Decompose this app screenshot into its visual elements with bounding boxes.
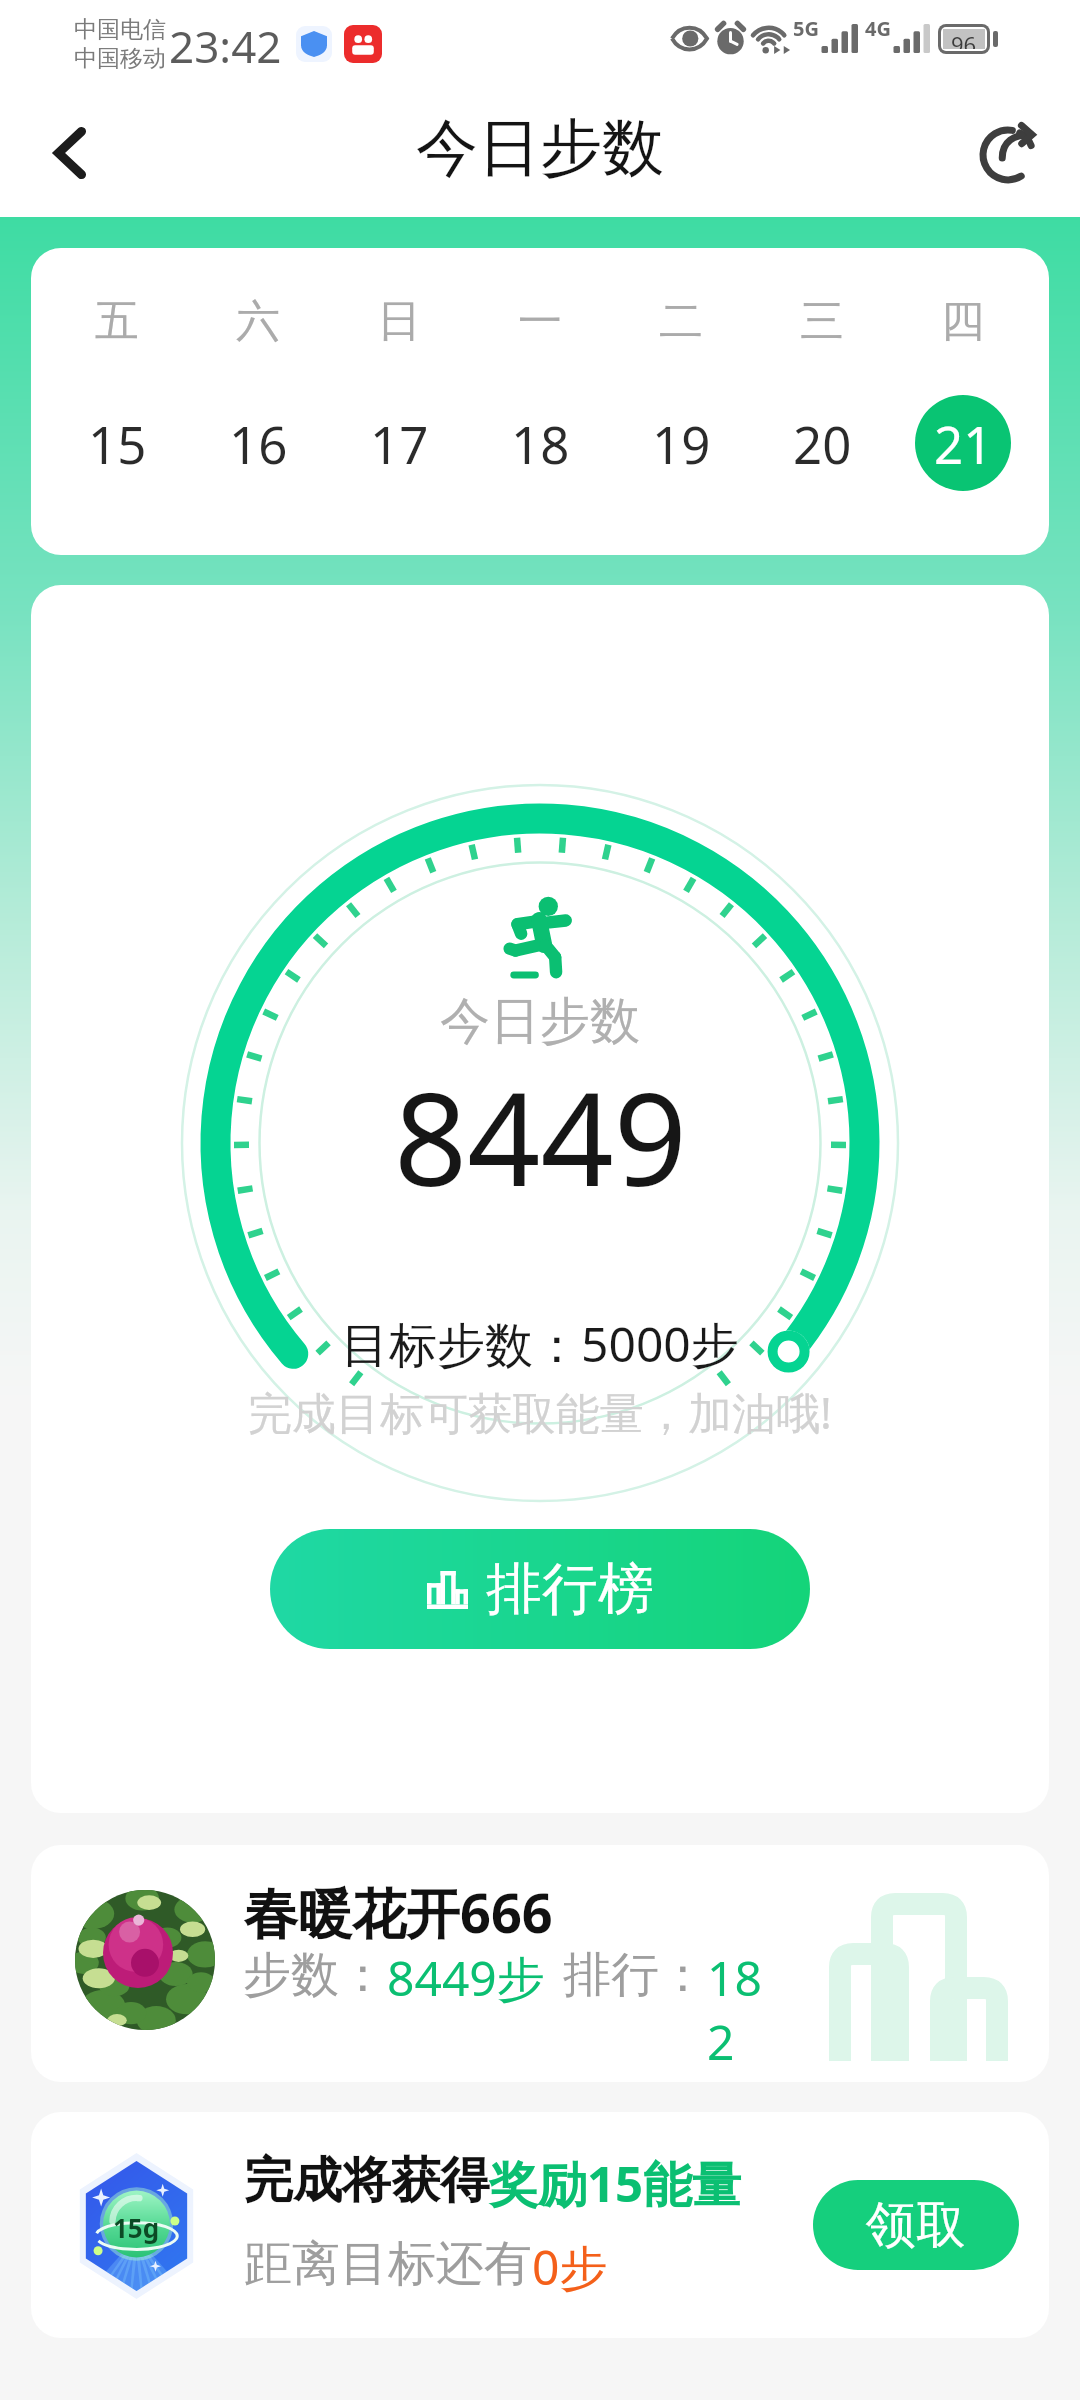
button[interactable]: 排行榜	[270, 1529, 810, 1649]
staticText: 182	[707, 1945, 765, 2074]
staticText: 领取	[866, 2194, 966, 2257]
staticText: 0步	[532, 2234, 608, 2300]
staticText: 距离目标还有	[244, 2234, 532, 2294]
staticText: 奖励15能量	[489, 2150, 742, 2217]
staticText: 8449步	[387, 1945, 545, 2011]
button[interactable]: 21	[915, 395, 1011, 491]
staticText: 4G	[865, 15, 891, 42]
button[interactable]: Back	[34, 117, 106, 189]
staticText: 今日步数	[416, 109, 664, 187]
staticText: 四	[941, 294, 985, 349]
staticText: 完成将获得	[244, 2150, 489, 2212]
staticText: 排行：	[563, 1945, 707, 2005]
staticText: 23:42	[169, 16, 282, 76]
staticText: 5G	[793, 15, 819, 42]
staticText: 15	[88, 409, 147, 478]
staticText: 一	[518, 294, 562, 349]
staticText: 二	[659, 294, 703, 349]
staticText: 21	[934, 409, 993, 478]
button[interactable]: 18	[492, 395, 588, 491]
button[interactable]: Refresh	[976, 121, 1040, 185]
staticText: 17	[370, 409, 429, 478]
staticText: 春暖花开666	[244, 1875, 553, 1949]
staticText: 步数：	[243, 1945, 387, 2005]
staticText: 六	[236, 294, 280, 349]
button[interactable]: 19	[633, 395, 729, 491]
staticText: 中国电信	[74, 15, 166, 44]
staticText: 15g	[113, 2210, 160, 2245]
staticText: 三	[800, 294, 844, 349]
staticText: 今日步数	[440, 990, 640, 1053]
button[interactable]: 17	[351, 395, 447, 491]
button[interactable]: 20	[774, 395, 870, 491]
button[interactable]: 16	[210, 395, 306, 491]
staticText: 20	[793, 409, 852, 478]
staticText: 排行榜	[486, 1554, 654, 1625]
button[interactable]: 春暖花开666	[31, 1845, 1049, 2082]
staticText: 19	[652, 409, 711, 478]
staticText: 日	[377, 294, 421, 349]
staticText: 16	[229, 409, 288, 478]
button[interactable]: 领取	[813, 2180, 1019, 2270]
staticText: 96	[951, 29, 977, 49]
staticText: 8449	[394, 1049, 687, 1223]
staticText: 完成目标可获取能量，加油哦!	[248, 1382, 832, 1442]
button[interactable]: 15	[69, 395, 165, 491]
staticText: 中国移动	[74, 44, 166, 73]
staticText: 目标步数：5000步	[341, 1311, 739, 1377]
staticText: 18	[511, 409, 570, 478]
staticText: 五	[95, 294, 139, 349]
